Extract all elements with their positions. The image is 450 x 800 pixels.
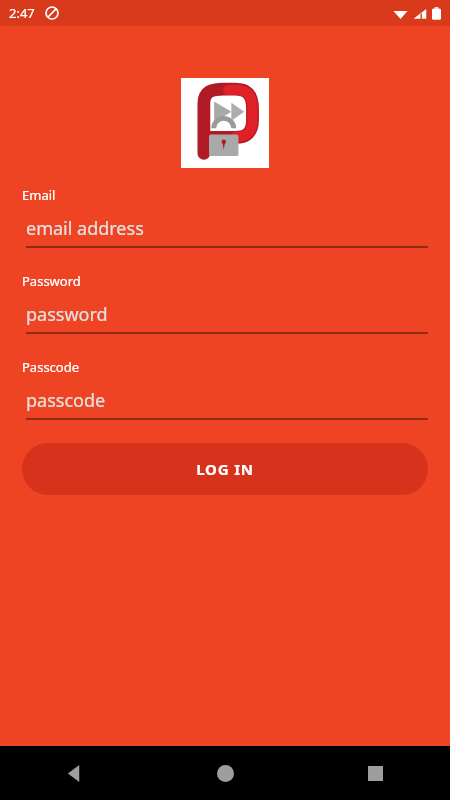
button[interactable]: Recent apps [300, 746, 450, 800]
button[interactable]: Back [0, 746, 150, 800]
button[interactable]: Home [150, 746, 300, 800]
staticText: passcode [26, 388, 106, 413]
button[interactable]: email address [22, 216, 428, 248]
staticText: LOG IN [196, 459, 254, 479]
staticText: Email [22, 186, 56, 204]
staticText: email address [26, 216, 144, 241]
staticText: Passcode [22, 358, 80, 376]
staticText: Password [22, 272, 81, 290]
button[interactable]: passcode [22, 388, 428, 420]
button[interactable]: password [22, 302, 428, 334]
staticText: 2:47 [9, 4, 35, 22]
staticText: password [26, 302, 108, 327]
button[interactable]: LOG IN [22, 443, 428, 495]
